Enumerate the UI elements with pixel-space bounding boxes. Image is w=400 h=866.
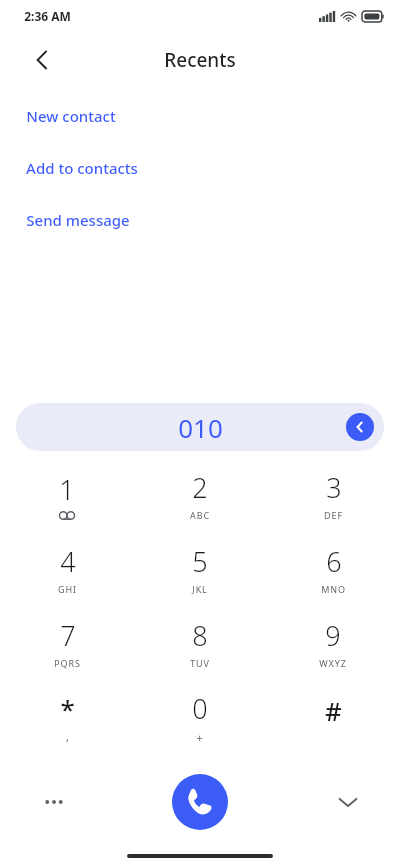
button[interactable]: Call xyxy=(172,774,228,830)
staticText: , xyxy=(66,729,70,744)
button[interactable]: Hide keypad xyxy=(326,780,370,824)
staticText: 3 xyxy=(326,469,342,506)
staticText: ABC xyxy=(190,509,210,521)
button[interactable]: Add to contacts xyxy=(0,152,400,184)
staticText: New contact xyxy=(26,106,116,126)
staticText: WXYZ xyxy=(319,657,347,669)
staticText: 0 xyxy=(192,690,208,727)
staticText: 8 xyxy=(192,617,208,654)
staticText: Recents xyxy=(164,47,236,73)
button[interactable]: Back xyxy=(20,38,64,82)
button[interactable]: 2 xyxy=(145,462,255,528)
button[interactable]: 6 xyxy=(278,536,388,602)
button[interactable]: Backspace xyxy=(346,413,374,441)
button[interactable]: * xyxy=(12,684,122,750)
staticText: 2 xyxy=(192,469,208,506)
staticText: 2:36 AM xyxy=(24,8,71,24)
button[interactable]: 1 xyxy=(12,462,122,528)
staticText: GHI xyxy=(58,583,77,595)
button[interactable]: 8 xyxy=(145,610,255,676)
staticText: PQRS xyxy=(54,657,81,669)
button[interactable]: 7 xyxy=(12,610,122,676)
staticText: + xyxy=(196,730,204,745)
button[interactable]: New contact xyxy=(0,100,400,132)
button[interactable]: 4 xyxy=(12,536,122,602)
staticText: 5 xyxy=(192,543,208,580)
staticText: 1 xyxy=(59,471,75,508)
button[interactable]: 0 xyxy=(145,684,255,750)
button[interactable]: More options xyxy=(32,780,76,824)
staticText: 7 xyxy=(60,617,76,654)
staticText: TUV xyxy=(190,657,210,669)
staticText: Add to contacts xyxy=(26,158,138,178)
button[interactable]: 3 xyxy=(278,462,388,528)
staticText: 6 xyxy=(326,543,342,580)
button[interactable]: 5 xyxy=(145,536,255,602)
button[interactable]: # xyxy=(278,684,388,750)
staticText: JKL xyxy=(192,583,208,595)
staticText: 010 xyxy=(178,410,223,445)
button[interactable]: Send message xyxy=(0,204,400,236)
staticText: Send message xyxy=(26,210,130,230)
button[interactable]: 9 xyxy=(278,610,388,676)
staticText: 9 xyxy=(325,617,341,654)
staticText: * xyxy=(60,691,75,726)
staticText: DEF xyxy=(324,509,343,521)
button[interactable]: 010 xyxy=(16,403,384,451)
staticText: 4 xyxy=(60,543,76,580)
staticText: MNO xyxy=(321,583,346,595)
staticText: # xyxy=(325,693,342,728)
